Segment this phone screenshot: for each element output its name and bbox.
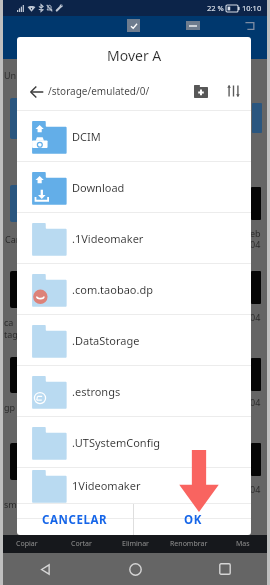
staticText: ca — [4, 316, 14, 328]
button[interactable]: Recents — [180, 553, 270, 585]
staticText: Cortar — [71, 539, 92, 549]
staticText: 04 — [250, 238, 261, 250]
staticText: Copiar — [16, 539, 38, 549]
staticText: .DataStorage — [72, 333, 140, 348]
staticText: Mas — [236, 539, 250, 549]
button[interactable]: Renombrar — [162, 535, 216, 553]
staticText: 1 (1) 1.0 — [22, 35, 52, 46]
staticText: 10:10 — [242, 3, 262, 13]
button[interactable]: Deselect — [186, 21, 200, 30]
button[interactable]: Mas — [216, 535, 270, 553]
button[interactable]: OK — [134, 504, 251, 535]
button[interactable]: Download — [17, 162, 251, 213]
button[interactable]: Home — [90, 553, 180, 585]
staticText: Unidad — [4, 69, 35, 81]
staticText: .com.taobao.dp — [72, 282, 153, 297]
button[interactable]: .DataStorage — [17, 315, 251, 366]
button[interactable]: Sort — [225, 83, 241, 99]
button[interactable]: Copiar — [0, 535, 54, 553]
staticText: Renombrar — [170, 539, 208, 549]
staticText: CANCELAR — [42, 512, 108, 528]
staticText: sm — [4, 498, 17, 510]
staticText: .estrongs — [72, 384, 121, 399]
button[interactable]: .UTSystemConfig — [17, 417, 251, 468]
staticText: OK — [184, 512, 202, 528]
button[interactable]: New folder — [193, 83, 209, 99]
staticText: .UTSystemConfig — [72, 435, 161, 450]
staticText: 04 — [250, 311, 261, 323]
button[interactable]: DCIM — [17, 111, 251, 162]
staticText: Download — [72, 180, 125, 195]
staticText: gp — [4, 401, 16, 413]
button[interactable]: Back — [0, 553, 90, 585]
staticText: Mover A — [107, 46, 162, 65]
staticText: tag — [4, 328, 18, 340]
button[interactable]: .com.taobao.dp — [17, 264, 251, 315]
button[interactable]: 1Videomaker — [17, 468, 251, 503]
staticText: 04 — [250, 483, 261, 495]
button[interactable]: Back — [29, 84, 44, 99]
staticText: .1Videomaker — [72, 231, 144, 246]
staticText: 04 — [250, 396, 261, 408]
button[interactable]: Cortar — [54, 535, 108, 553]
staticText: eb — [250, 227, 261, 239]
button[interactable]: CANCELAR — [17, 504, 133, 535]
button[interactable]: Eliminar — [108, 535, 162, 553]
button[interactable]: Select all — [127, 19, 140, 32]
button[interactable]: .estrongs — [17, 366, 251, 417]
staticText: Camara — [5, 233, 38, 245]
button[interactable]: .1Videomaker — [17, 213, 251, 264]
staticText: 1Videomaker — [72, 478, 141, 493]
staticText: DCIM — [72, 129, 101, 144]
staticText: /storage/emulated/0/ — [48, 84, 150, 98]
staticText: 22 % — [207, 3, 224, 13]
staticText: Eliminar — [122, 539, 149, 549]
